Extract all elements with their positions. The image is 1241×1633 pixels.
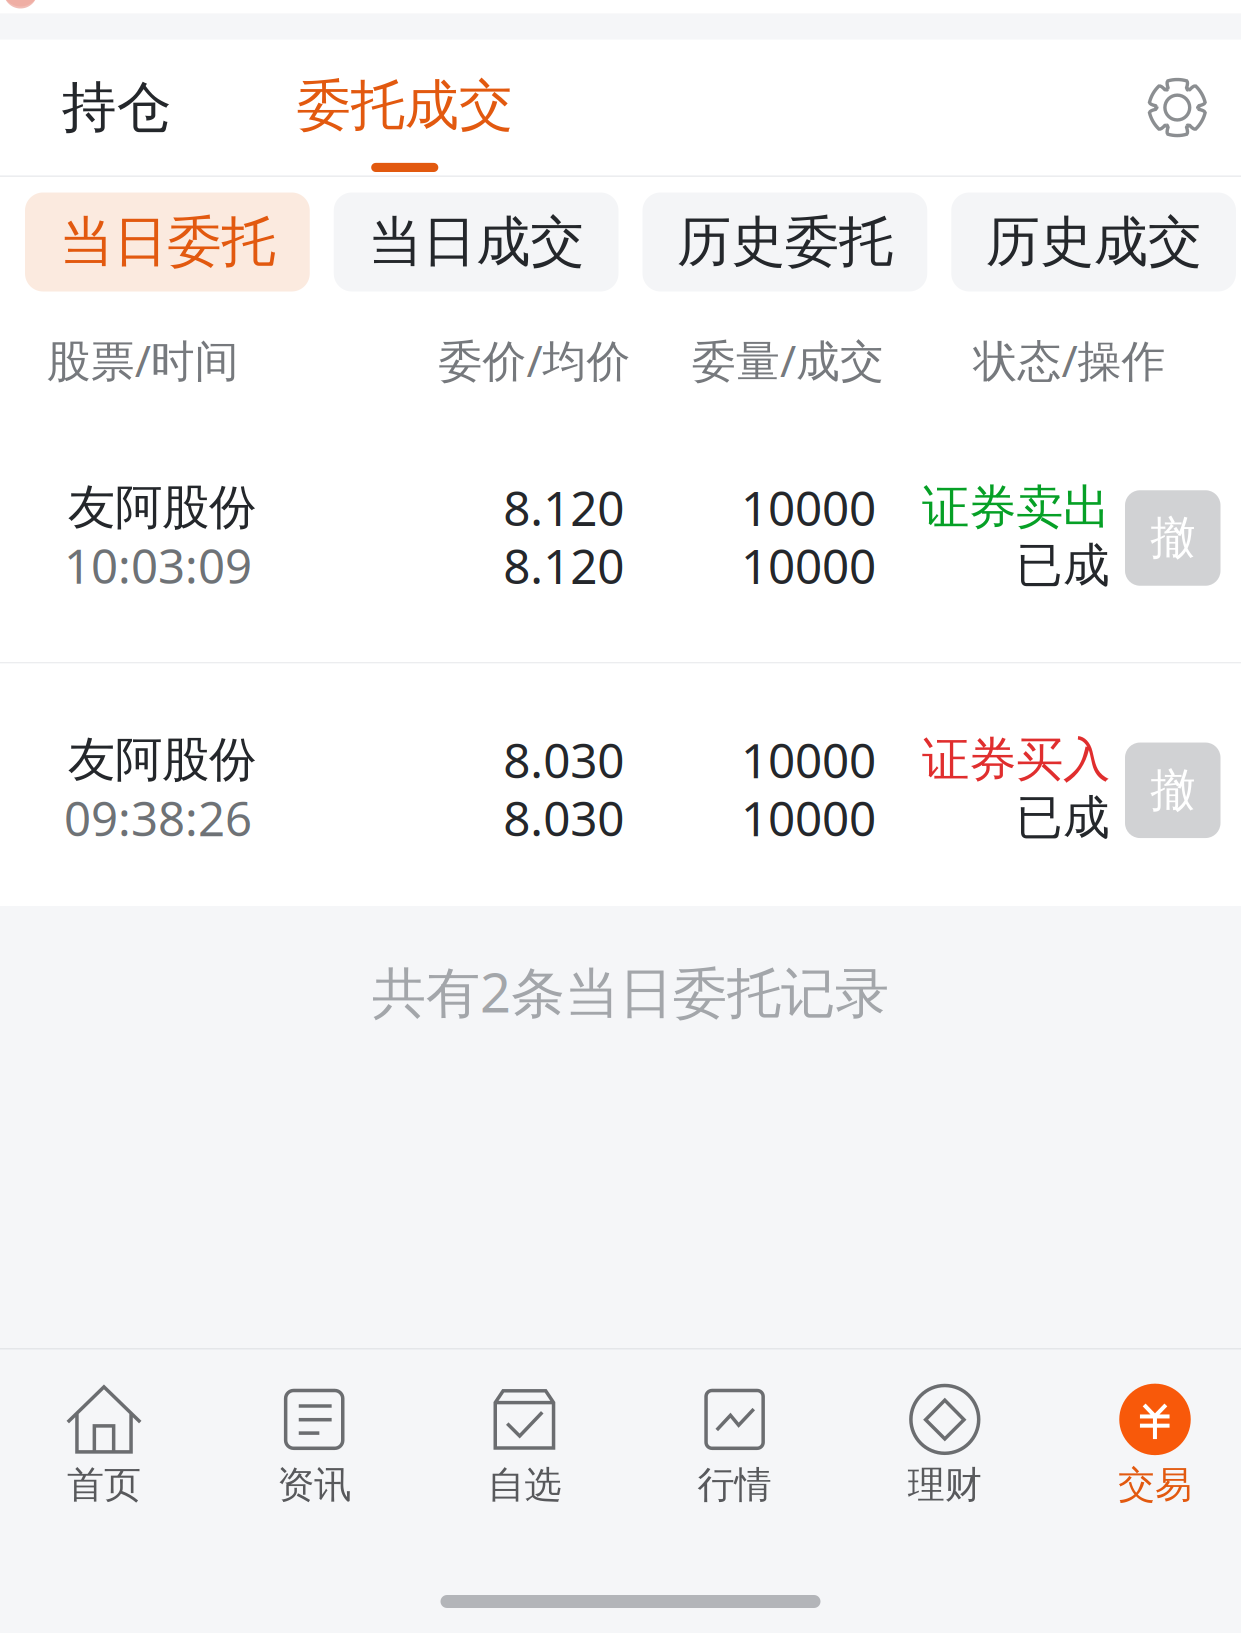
button[interactable]: 撤 (1125, 742, 1220, 838)
button[interactable]: 自选 (454, 1349, 594, 1539)
staticText: 行情 (698, 1462, 772, 1508)
staticText: 当日成交 (368, 208, 584, 276)
staticText: 首页 (67, 1462, 141, 1508)
button[interactable]: 首页 (34, 1349, 174, 1539)
button[interactable]: 交易 (1085, 1349, 1225, 1539)
staticText: 历史成交 (986, 208, 1202, 276)
button[interactable]: 历史成交 (951, 192, 1236, 291)
staticText: 持仓 (62, 73, 172, 142)
staticText: 撤 (1150, 509, 1195, 566)
staticText: 交易 (1118, 1462, 1192, 1508)
button[interactable]: 持仓 (51, 40, 182, 175)
staticText: 8.030 (503, 785, 624, 850)
staticText: 自选 (487, 1462, 561, 1508)
staticText: 友阿股份 (68, 478, 256, 537)
button[interactable]: Settings (1147, 40, 1208, 175)
staticText: 8.120 (503, 475, 624, 540)
staticText: 资讯 (277, 1462, 351, 1508)
staticText: 10:03:09 (64, 533, 252, 598)
button[interactable]: 历史委托 (642, 192, 927, 291)
button[interactable]: 当日成交 (334, 192, 619, 291)
staticText: 10000 (741, 727, 876, 792)
staticText: 撤 (1150, 762, 1195, 819)
staticText: 已成 (1016, 788, 1110, 847)
staticText: 已成 (1016, 536, 1110, 595)
button[interactable]: 行情 (665, 1349, 805, 1539)
staticText: 理财 (908, 1462, 982, 1508)
button[interactable]: 资讯 (244, 1349, 384, 1539)
staticText: 10000 (741, 475, 876, 540)
staticText: 10000 (741, 785, 876, 850)
staticText: 10000 (741, 533, 876, 598)
button[interactable]: 理财 (875, 1349, 1015, 1539)
button[interactable]: 当日委托 (25, 192, 310, 291)
staticText: 当日委托 (59, 208, 275, 276)
staticText: 股票/时间 (47, 330, 239, 390)
staticText: 友阿股份 (68, 730, 256, 790)
staticText: 证券卖出 (922, 478, 1110, 537)
staticText: 8.120 (503, 533, 624, 598)
staticText: 09:38:26 (64, 786, 252, 850)
button[interactable]: 撤 (1125, 490, 1220, 586)
staticText: 历史委托 (677, 208, 893, 276)
staticText: 委量/成交 (692, 330, 884, 390)
staticText: 证券买入 (922, 730, 1110, 790)
staticText: 共有2条当日委托记录 (372, 955, 889, 1028)
button[interactable]: 委托成交 (287, 40, 522, 175)
staticText: 委托成交 (297, 71, 513, 140)
staticText: 状态/操作 (973, 330, 1165, 390)
staticText: 8.030 (503, 727, 624, 792)
staticText: 委价/均价 (438, 330, 630, 390)
